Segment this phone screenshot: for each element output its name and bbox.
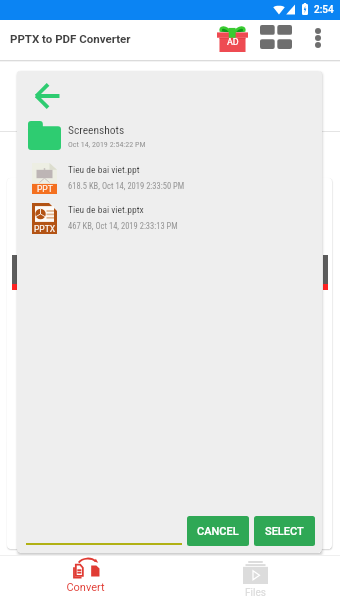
staticText: 618.5 KB, Oct 14, 2019 2:33:50 PM	[68, 181, 185, 191]
staticText: PPTX to PDF Converter	[10, 32, 131, 45]
button[interactable]: Files	[170, 555, 340, 604]
staticText: Screenshots	[68, 123, 125, 136]
button[interactable]: Advertisement	[212, 17, 253, 59]
staticText: Oct 14, 2019 2:54:22 PM	[68, 140, 146, 149]
button[interactable]: CANCEL	[187, 516, 249, 546]
button[interactable]: Screenshots	[17, 116, 322, 156]
button[interactable]: Convert	[0, 555, 170, 604]
staticText: 467 KB, Oct 14, 2019 2:33:13 PM	[68, 221, 178, 231]
button[interactable]: SELECT	[254, 516, 315, 546]
staticText: 2:54	[314, 4, 334, 16]
button[interactable]: PPT	[17, 159, 322, 199]
staticText: CANCEL	[197, 525, 239, 538]
staticText: Files	[245, 587, 266, 599]
staticText: Tieu de bai viet.pptx	[68, 204, 144, 215]
button[interactable]: Grid view	[254, 16, 298, 58]
button[interactable]: PPTX	[17, 199, 322, 239]
staticText: Convert	[66, 581, 105, 594]
button[interactable]: More options	[299, 17, 337, 59]
staticText: Tieu de bai viet.ppt	[68, 164, 140, 175]
button[interactable]: Back	[22, 71, 71, 120]
staticText: PPTX	[34, 224, 56, 234]
staticText: AD	[227, 37, 239, 48]
staticText: SELECT	[265, 525, 304, 538]
staticText: PPT	[37, 184, 53, 194]
